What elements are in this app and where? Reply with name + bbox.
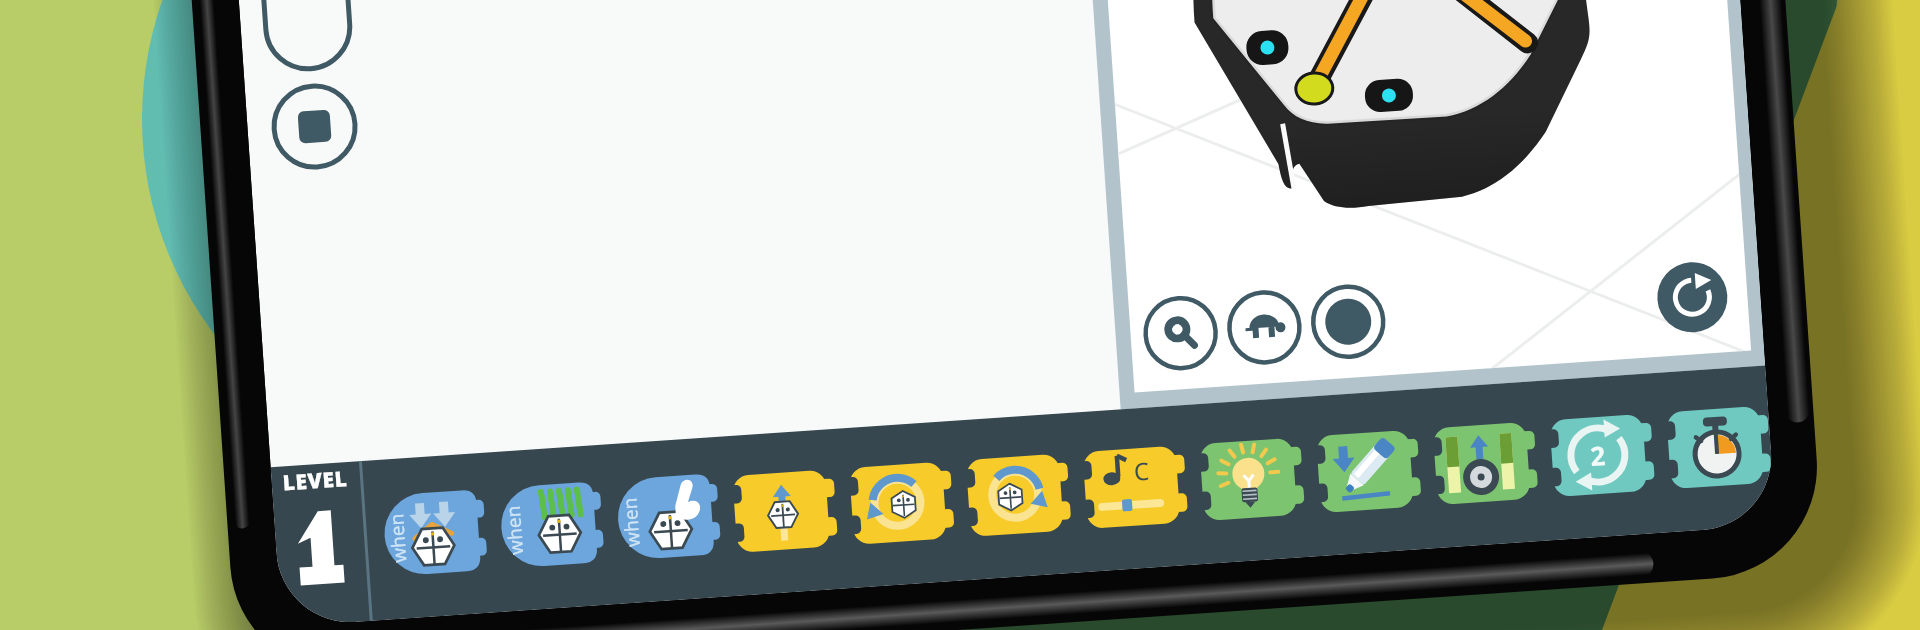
button[interactable] (0, 0, 1920, 630)
